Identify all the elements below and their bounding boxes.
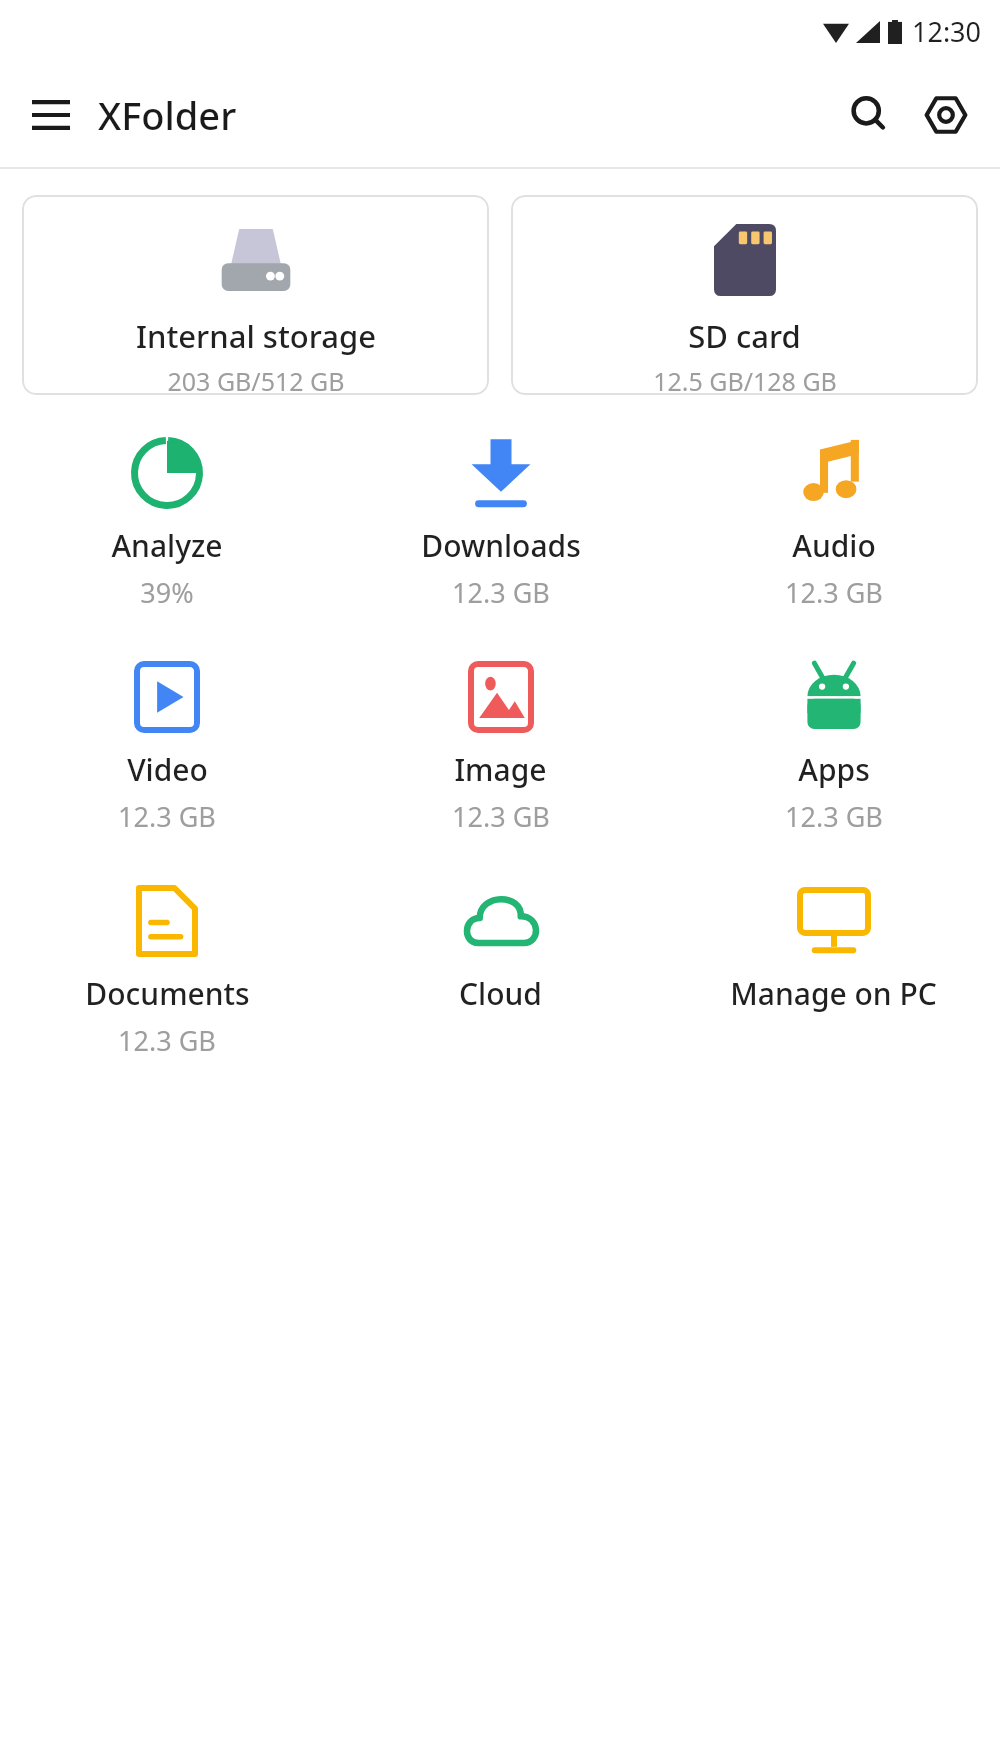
staticText: Manage on PC: [730, 973, 937, 1014]
staticText: Video: [127, 749, 208, 790]
staticText: Apps: [798, 749, 870, 790]
button[interactable]: Analyze: [0, 425, 334, 617]
staticText: Audio: [792, 525, 876, 566]
button[interactable]: Search: [832, 77, 908, 153]
staticText: 12.3 GB: [785, 574, 883, 611]
button[interactable]: Video: [0, 649, 334, 841]
staticText: 12.3 GB: [452, 798, 550, 835]
staticText: 12.3 GB: [785, 798, 883, 835]
button[interactable]: Cloud: [334, 873, 667, 1020]
staticText: Downloads: [421, 525, 581, 566]
staticText: 203 GB/512 GB: [167, 364, 345, 395]
button[interactable]: Downloads: [334, 425, 667, 617]
staticText: Documents: [85, 973, 250, 1014]
staticText: 12.3 GB: [452, 574, 550, 611]
staticText: Image: [454, 749, 547, 790]
button[interactable]: Image: [334, 649, 667, 841]
button[interactable]: Open navigation menu: [22, 86, 80, 144]
staticText: Cloud: [459, 973, 542, 1014]
button[interactable]: Audio: [667, 425, 1000, 617]
staticText: 39%: [140, 574, 194, 611]
staticText: 12.3 GB: [118, 1022, 216, 1059]
button[interactable]: Settings: [908, 77, 984, 153]
button[interactable]: Apps: [667, 649, 1000, 841]
staticText: SD card: [688, 315, 801, 357]
staticText: 12.5 GB/128 GB: [653, 364, 837, 395]
staticText: Internal storage: [136, 315, 376, 357]
staticText: Analyze: [111, 525, 223, 566]
button[interactable]: Manage on PC: [667, 873, 1000, 1020]
button[interactable]: SD card: [511, 195, 978, 395]
button[interactable]: Internal storage: [22, 195, 489, 395]
button[interactable]: Documents: [0, 873, 334, 1065]
staticText: 12:30: [912, 13, 982, 50]
staticText: 12.3 GB: [118, 798, 216, 835]
staticText: XFolder: [98, 89, 237, 141]
